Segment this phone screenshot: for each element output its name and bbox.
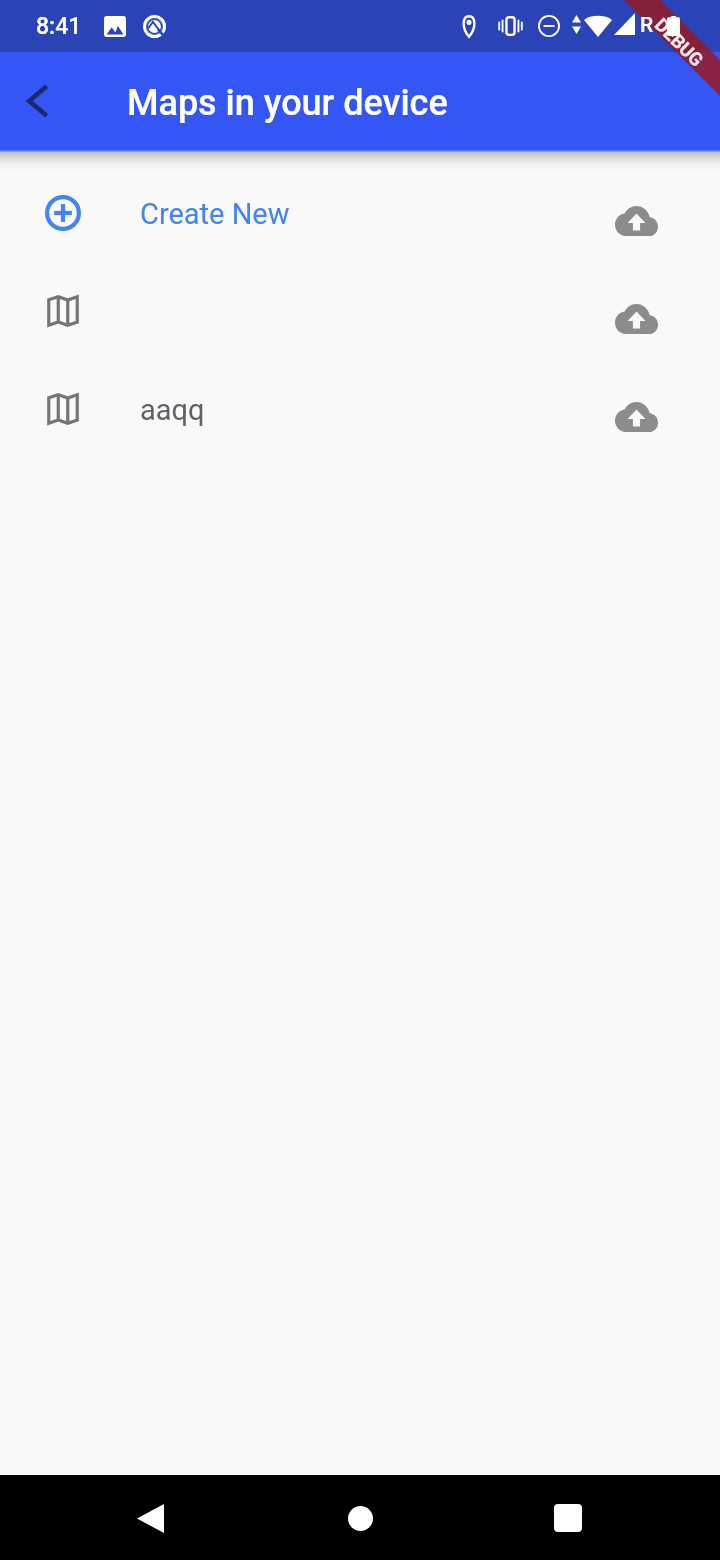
button[interactable]: Create New — [0, 164, 720, 262]
button[interactable]: Home — [330, 1488, 390, 1548]
button[interactable]: Map — [0, 262, 720, 360]
staticText: Create New — [140, 197, 290, 231]
button[interactable]: Upload — [608, 389, 664, 445]
staticText: DEBUG — [650, 14, 708, 72]
staticText: aaqq — [140, 393, 205, 427]
button[interactable]: Back — [10, 73, 66, 129]
button[interactable]: Upload — [608, 193, 664, 249]
staticText: R — [640, 13, 654, 38]
button[interactable]: aaqq — [0, 360, 720, 458]
button[interactable]: Upload — [608, 291, 664, 347]
button[interactable]: Recents — [538, 1488, 598, 1548]
staticText: 8:41 — [36, 13, 82, 40]
button[interactable]: Back — [120, 1488, 180, 1548]
staticText: Maps in your device — [127, 82, 448, 124]
